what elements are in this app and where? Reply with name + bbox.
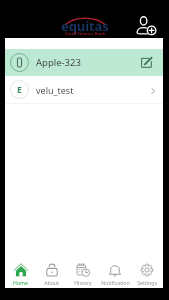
button[interactable]: Home	[5, 260, 36, 288]
staticText: Notification	[101, 279, 130, 286]
staticText: About	[44, 279, 59, 286]
staticText: equitas	[61, 17, 109, 35]
staticText: Apple-323	[36, 56, 81, 69]
button[interactable]: Add user	[136, 15, 157, 36]
staticText: History	[74, 279, 92, 286]
staticText: Small Finance Bank	[65, 31, 106, 37]
staticText: Home	[13, 279, 28, 286]
button[interactable]: Apple-323	[5, 49, 163, 76]
button[interactable]: History	[67, 260, 99, 288]
button[interactable]: About	[36, 260, 67, 288]
button[interactable]: Settings	[131, 260, 163, 288]
button[interactable]: Edit	[141, 57, 152, 68]
staticText: E	[17, 84, 22, 96]
staticText: Settings	[137, 279, 157, 286]
staticText: velu_test	[36, 84, 74, 96]
button[interactable]: Notification	[99, 260, 131, 288]
button[interactable]: E	[5, 76, 163, 103]
